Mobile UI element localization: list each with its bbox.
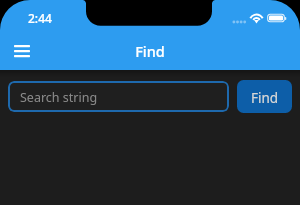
staticText: Find (135, 41, 165, 61)
button[interactable]: Find (237, 80, 292, 113)
staticText: Search string (20, 89, 98, 106)
button[interactable]: Menu (4, 38, 40, 64)
staticText: 2:44 (28, 10, 52, 26)
button[interactable]: Search string (8, 81, 229, 112)
staticText: Find (251, 89, 279, 107)
